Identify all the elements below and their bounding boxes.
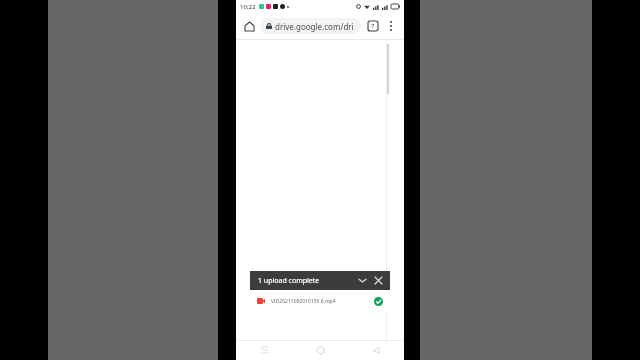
staticText: VID20211092010155 6.mp4: [271, 298, 336, 305]
button[interactable]: Home: [241, 18, 257, 34]
button[interactable]: Close: [372, 274, 385, 287]
staticText: 7: [371, 22, 375, 30]
button[interactable]: Collapse: [356, 274, 369, 287]
button[interactable]: Back: [348, 341, 404, 360]
button[interactable]: Home: [292, 341, 348, 360]
button[interactable]: VID20211092010155 6.mp4: [250, 290, 390, 312]
staticText: 10:22: [240, 3, 256, 11]
button[interactable]: 1 upload complete: [250, 271, 390, 290]
button[interactable]: drive.google.com/dri: [260, 18, 361, 34]
button[interactable]: More options: [383, 18, 399, 34]
button[interactable]: Recent apps: [236, 341, 292, 360]
button[interactable]: Switch tabs: [365, 18, 381, 34]
staticText: drive.google.com/dri: [275, 21, 354, 32]
staticText: 1 upload complete: [258, 276, 320, 286]
